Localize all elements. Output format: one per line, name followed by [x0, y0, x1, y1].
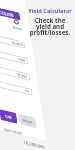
button[interactable]: 18,300 — [0, 52, 33, 94]
button[interactable]: Reset — [13, 107, 41, 135]
button[interactable]: Reset — [11, 17, 21, 27]
staticText: Yield Calculator — [27, 7, 73, 15]
staticText: Sum result — [1, 119, 25, 143]
staticText: 900 — [16, 54, 28, 66]
staticText: CALCULATE — [0, 0, 16, 27]
button[interactable]: 18,400 — [0, 20, 29, 62]
staticText: 1% — [22, 86, 33, 97]
staticText: 16,200,000 — [20, 131, 48, 150]
staticText: 18,300 — [13, 67, 30, 84]
staticText: Check the yield and profit/losses. — [27, 16, 73, 37]
staticText: Calc — [2, 110, 14, 123]
button[interactable]: 1% — [0, 67, 36, 109]
button[interactable]: Calc — [0, 102, 22, 131]
staticText: 18,400 — [9, 35, 26, 52]
button[interactable]: CALCULATE — [0, 0, 24, 34]
button[interactable]: 900 — [0, 36, 31, 78]
staticText: Reset — [10, 21, 24, 35]
staticText: Reset — [20, 114, 35, 129]
